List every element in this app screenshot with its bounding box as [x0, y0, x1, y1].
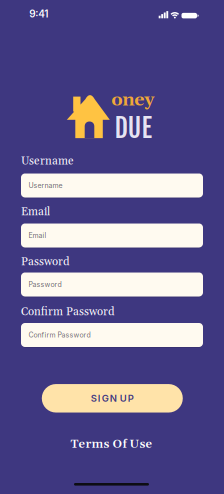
staticText: S I G N U P — [91, 393, 134, 404]
button[interactable]: Password text field — [21, 272, 203, 296]
staticText: Password — [21, 255, 69, 269]
staticText: Terms Of Use — [70, 437, 152, 452]
staticText: Email — [28, 231, 46, 240]
staticText: Password — [28, 280, 61, 289]
staticText: 9:41 — [29, 8, 48, 20]
staticText: Email — [21, 205, 50, 219]
button[interactable]: Email text field — [21, 223, 203, 247]
button[interactable]: S I G N U P — [42, 384, 183, 413]
button[interactable]: Username text field — [21, 173, 203, 197]
staticText: Username — [28, 181, 62, 190]
staticText: Username — [21, 154, 74, 168]
staticText: DUE — [114, 112, 151, 144]
staticText: oney — [111, 89, 154, 112]
button[interactable]: Confirm Password text field — [21, 323, 203, 347]
staticText: Confirm Password — [28, 331, 90, 339]
button[interactable]: Terms Of Use — [70, 437, 152, 452]
staticText: Confirm Password — [21, 305, 114, 319]
